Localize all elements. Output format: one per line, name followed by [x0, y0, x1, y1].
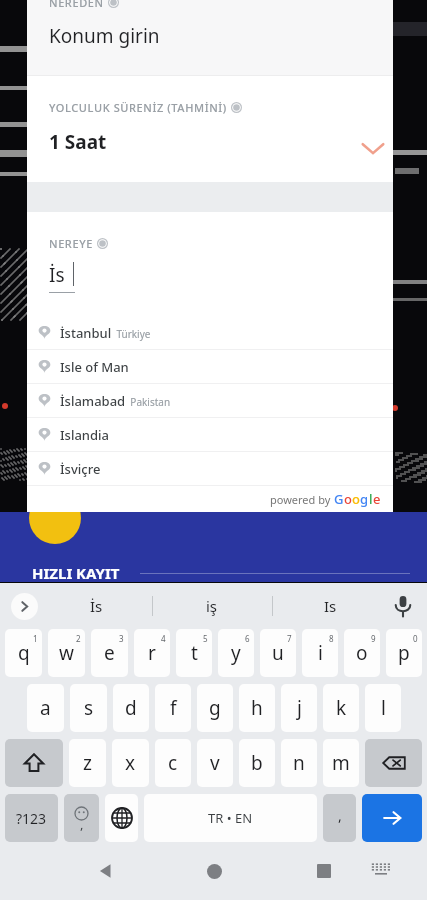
staticText: z — [83, 750, 92, 776]
button[interactable]: g — [197, 684, 233, 732]
button[interactable]: u — [260, 629, 296, 677]
staticText: f — [170, 695, 177, 721]
button[interactable]: d — [113, 684, 149, 732]
staticText: l — [381, 695, 386, 721]
staticText: u — [272, 640, 284, 666]
button[interactable]: Home — [192, 842, 236, 900]
button[interactable]: NEREDEN — [27, 0, 393, 75]
staticText: ?123 — [16, 809, 47, 828]
button[interactable]: x — [112, 739, 149, 787]
staticText: 0 — [413, 633, 418, 644]
button[interactable]: w — [48, 629, 85, 677]
button[interactable]: iş — [170, 583, 254, 629]
button[interactable]: s — [70, 684, 107, 732]
staticText: o — [356, 640, 368, 666]
button[interactable]: e — [91, 629, 128, 677]
staticText: 4 — [161, 633, 166, 644]
staticText: j — [297, 695, 302, 721]
staticText: n — [293, 750, 305, 776]
staticText: k — [336, 695, 347, 721]
button[interactable]: Islandia — [27, 418, 393, 451]
button[interactable]: o — [344, 629, 380, 677]
staticText: a — [40, 695, 51, 721]
button[interactable]: j — [281, 684, 317, 732]
button[interactable]: Back — [84, 842, 128, 900]
button[interactable]: i — [302, 629, 338, 677]
staticText: , — [338, 806, 342, 825]
staticText: o — [352, 490, 360, 508]
button[interactable]: k — [323, 684, 359, 732]
staticText: İstanbul Türkiye — [60, 324, 151, 342]
button[interactable]: l — [365, 684, 401, 732]
button[interactable]: v — [197, 739, 233, 787]
button[interactable]: a — [27, 684, 64, 732]
staticText: s — [84, 695, 94, 721]
staticText: Konum girin — [49, 23, 160, 49]
button[interactable]: q — [5, 629, 42, 677]
staticText: g — [209, 695, 221, 721]
staticText: c — [168, 750, 178, 776]
staticText: HIZLI KAYIT — [32, 563, 120, 583]
button[interactable]: t — [176, 629, 212, 677]
button[interactable]: p — [386, 629, 422, 677]
staticText: t — [191, 640, 198, 666]
button[interactable]: İsviçre — [27, 452, 393, 485]
staticText: 1 Saat — [49, 129, 107, 155]
staticText: p — [398, 640, 410, 666]
staticText: 1 — [33, 633, 38, 644]
staticText: g — [360, 490, 369, 508]
staticText: v — [210, 750, 220, 776]
button[interactable]: r — [134, 629, 170, 677]
button[interactable]: h — [239, 684, 275, 732]
button[interactable]: , — [323, 794, 356, 842]
staticText: r — [148, 640, 156, 666]
staticText: e — [104, 640, 115, 666]
staticText: iş — [206, 596, 218, 616]
staticText: w — [59, 640, 74, 666]
button[interactable]: Change language — [105, 794, 138, 842]
staticText: l — [369, 490, 373, 508]
button[interactable]: c — [155, 739, 191, 787]
staticText: i — [318, 640, 323, 666]
button[interactable]: b — [239, 739, 275, 787]
staticText: YOLCULUK SÜRENİZ (TAHMİNİ) — [49, 100, 227, 115]
button[interactable]: İs — [54, 583, 138, 629]
button[interactable]: Backspace — [365, 739, 422, 787]
button[interactable]: İstanbul Türkiye — [27, 316, 393, 349]
staticText: b — [251, 750, 263, 776]
staticText: q — [18, 640, 30, 666]
button[interactable]: Recents — [302, 842, 346, 900]
staticText: h — [251, 695, 263, 721]
staticText: 7 — [287, 633, 292, 644]
staticText: 2 — [76, 633, 81, 644]
button[interactable]: NEREYE — [27, 212, 393, 316]
staticText: y — [231, 640, 241, 666]
button[interactable]: Shift — [5, 739, 63, 787]
staticText: NEREYE — [49, 236, 93, 251]
button[interactable]: Hide keyboard — [363, 842, 399, 900]
button[interactable]: Isle of Man — [27, 350, 393, 383]
button[interactable]: YOLCULUK SÜRENİZ (TAHMİNİ) — [27, 76, 393, 182]
button[interactable]: m — [323, 739, 359, 787]
button[interactable]: y — [218, 629, 254, 677]
staticText: d — [125, 695, 137, 721]
button[interactable]: ?123 — [5, 794, 58, 842]
button[interactable]: Enter — [362, 794, 422, 842]
button[interactable]: f — [155, 684, 191, 732]
button[interactable]: z — [69, 739, 106, 787]
button[interactable]: Emoji — [64, 794, 99, 842]
staticText: 5 — [203, 633, 208, 644]
staticText: Islandia — [60, 426, 110, 444]
staticText: Is — [324, 596, 337, 616]
staticText: x — [125, 750, 136, 776]
staticText: e — [373, 490, 381, 508]
button[interactable]: Expand toolbar — [11, 593, 38, 620]
button[interactable]: İslamabad Pakistan — [27, 384, 393, 417]
staticText: 9 — [371, 633, 376, 644]
staticText: m — [332, 750, 350, 776]
button[interactable]: TR • EN — [144, 794, 317, 842]
button[interactable]: n — [281, 739, 317, 787]
button[interactable]: Is — [288, 583, 372, 629]
button[interactable]: Voice input — [390, 593, 416, 619]
staticText: NEREDEN — [49, 0, 104, 10]
